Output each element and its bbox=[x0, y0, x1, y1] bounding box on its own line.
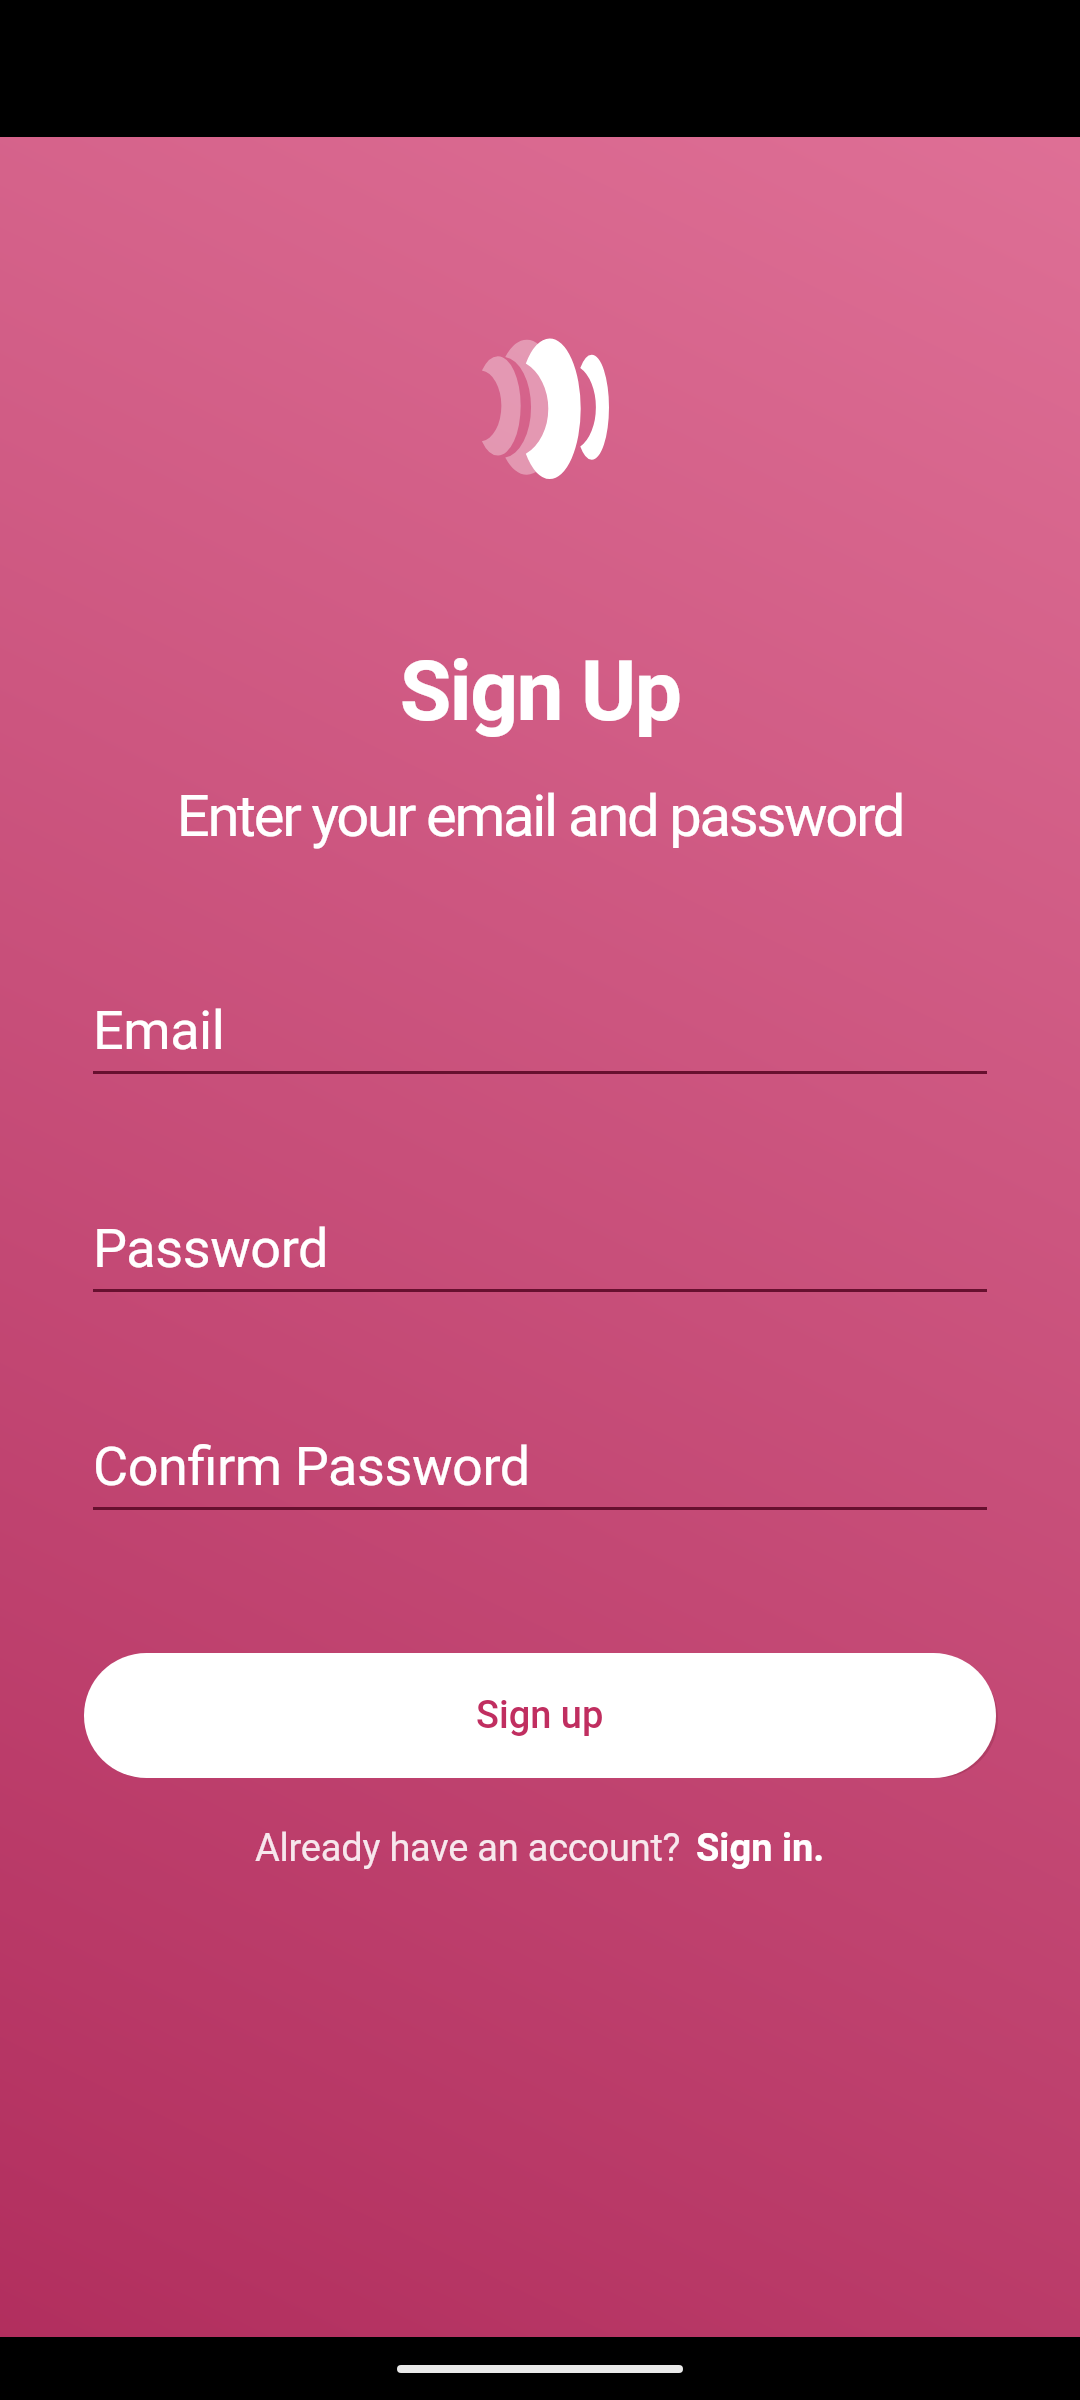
staticText: Password bbox=[93, 1217, 329, 1280]
staticText: Enter your email and password bbox=[0, 782, 1080, 850]
staticText: Sign in. bbox=[696, 1826, 825, 1871]
staticText: Sign up bbox=[476, 1693, 604, 1738]
staticText: Email bbox=[93, 999, 225, 1062]
button[interactable]: Email bbox=[93, 999, 987, 1074]
staticText: Already have an account? bbox=[255, 1826, 681, 1871]
button[interactable]: Confirm Password bbox=[93, 1435, 987, 1510]
button[interactable]: Sign up bbox=[84, 1653, 996, 1778]
staticText: Sign Up bbox=[0, 642, 1080, 740]
button[interactable]: Sign in. bbox=[696, 1826, 825, 1871]
staticText: Confirm Password bbox=[93, 1435, 530, 1498]
button[interactable]: Password bbox=[93, 1217, 987, 1292]
other: App logo bbox=[471, 337, 609, 479]
